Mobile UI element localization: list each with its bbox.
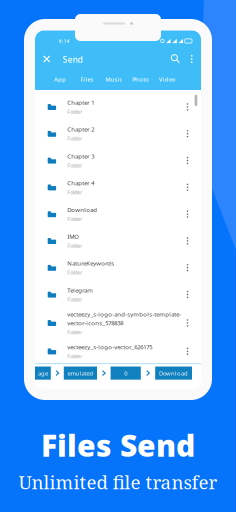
staticText: IMO: [67, 232, 79, 241]
staticText: Chapter 3: [67, 152, 94, 160]
staticText: Chapter 1: [67, 98, 94, 107]
button[interactable]: Music: [101, 69, 127, 89]
staticText: emulated: [67, 369, 93, 377]
button[interactable]: Download: [155, 366, 192, 380]
button[interactable]: emulated: [64, 366, 97, 380]
button[interactable]: Close: [36, 48, 58, 70]
staticText: age: [38, 369, 48, 377]
staticText: Download: [159, 369, 188, 377]
staticText: Folder: [67, 296, 82, 303]
staticText: vector-icons_578838: [67, 319, 123, 327]
staticText: vecteezy_s-logo-vector_626175: [67, 343, 152, 351]
staticText: Files: [81, 75, 94, 83]
button[interactable]: More options: [183, 49, 201, 69]
staticText: App: [54, 75, 66, 83]
button[interactable]: Video: [154, 69, 180, 89]
button[interactable]: Files: [74, 69, 100, 89]
staticText: Music: [105, 75, 122, 83]
staticText: Folder: [67, 188, 82, 196]
staticText: Folder: [67, 242, 82, 249]
button[interactable]: vecteezy_s-logo-and-symbols-template-: [35, 308, 201, 338]
button[interactable]: vecteezy_s-logo-vector_626175: [35, 338, 201, 365]
staticText: Send: [63, 54, 83, 65]
staticText: Video: [159, 75, 176, 83]
staticText: Folder: [67, 269, 82, 276]
staticText: NatureKeywords: [67, 259, 114, 267]
button[interactable]: IMO: [35, 227, 201, 254]
button[interactable]: Photo: [128, 69, 154, 89]
button[interactable]: Chapter 2: [35, 120, 201, 147]
staticText: Folder: [67, 352, 82, 360]
staticText: Unlimited file transfer: [18, 469, 217, 495]
staticText: vecteezy_s-logo-and-symbols-template-: [67, 310, 181, 318]
button[interactable]: Chapter 1: [35, 93, 201, 120]
staticText: Chapter 2: [67, 125, 94, 133]
staticText: Folder: [67, 135, 82, 142]
button[interactable]: Telegram: [35, 281, 201, 308]
button[interactable]: Chapter 3: [35, 147, 201, 174]
staticText: Photo: [132, 75, 149, 83]
staticText: Download: [67, 206, 97, 214]
button[interactable]: Chapter 4: [35, 174, 201, 201]
staticText: 4:14: [58, 37, 69, 45]
staticText: Files Send: [41, 425, 195, 465]
staticText: Telegram: [67, 286, 93, 294]
staticText: Chapter 4: [67, 179, 94, 187]
button[interactable]: age: [35, 366, 51, 380]
staticText: Folder: [67, 215, 82, 223]
button[interactable]: Download: [35, 201, 201, 227]
staticText: Folder: [67, 328, 82, 336]
button[interactable]: NatureKeywords: [35, 254, 201, 281]
staticText: Folder: [67, 162, 82, 169]
staticText: 0: [124, 369, 127, 377]
button[interactable]: App: [47, 69, 73, 89]
staticText: Folder: [67, 108, 82, 115]
button[interactable]: 0: [111, 366, 141, 380]
button[interactable]: Search: [166, 49, 186, 69]
